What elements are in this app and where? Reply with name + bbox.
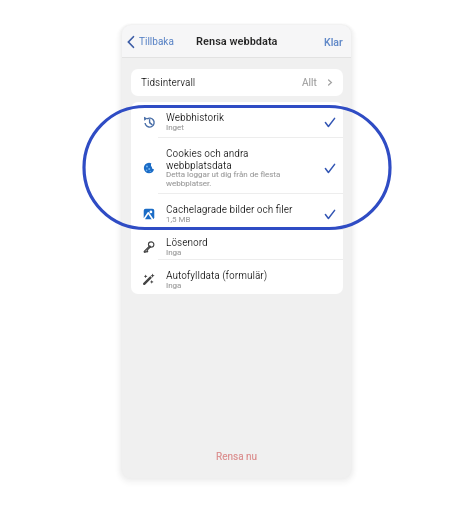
staticText: Cookies och andra webbplatsdata — [166, 148, 249, 171]
button[interactable]: Lösenord — [131, 230, 343, 259]
staticText: Rensa webbdata — [196, 35, 278, 48]
button[interactable]: Tidsintervall — [131, 69, 343, 96]
staticText: Lösenord — [166, 237, 208, 249]
button[interactable]: Cachelagrade bilder och filer — [131, 194, 343, 229]
button[interactable]: Klar — [316, 31, 351, 53]
staticText: Inga — [166, 281, 182, 290]
staticText: Allt — [302, 77, 317, 89]
staticText: Inga — [166, 248, 182, 257]
staticText: Cachelagrade bilder och filer — [166, 204, 293, 216]
button[interactable]: Tillbaka — [124, 32, 177, 52]
staticText: webbplatser. — [166, 179, 212, 188]
staticText: Tidsintervall — [141, 77, 196, 89]
staticText: Autofylldata (formulär) — [166, 270, 268, 282]
button[interactable]: Cookies och andra webbplatsdata — [131, 138, 343, 193]
button[interactable]: Webbhistorik — [131, 102, 343, 137]
staticText: Tillbaka — [139, 36, 174, 48]
staticText: Inget — [166, 123, 184, 132]
staticText: Webbhistorik — [166, 112, 225, 124]
staticText: 1,5 MB — [166, 215, 191, 224]
button[interactable]: Autofylldata (formulär) — [131, 260, 343, 294]
button[interactable]: Rensa nu — [122, 444, 351, 470]
staticText: Rensa nu — [216, 451, 258, 463]
staticText: Detta loggar ut dig från de flesta — [166, 170, 281, 179]
